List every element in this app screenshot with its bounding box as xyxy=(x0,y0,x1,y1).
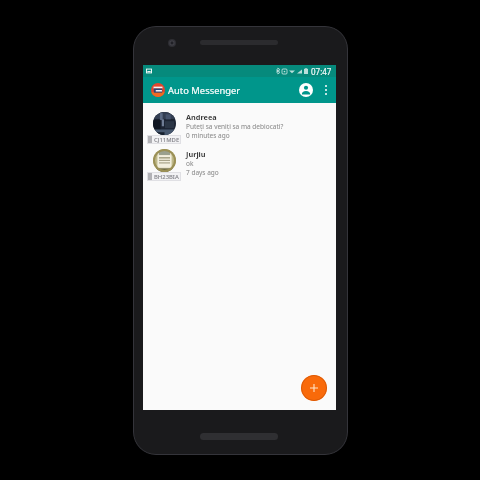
staticText: ok xyxy=(186,159,194,168)
staticText: 0 minutes ago xyxy=(186,131,230,140)
staticText: Puteți sa veniți sa ma debiocati? xyxy=(186,122,284,131)
button[interactable]: New message xyxy=(301,375,327,401)
staticText: 07:47 xyxy=(311,66,332,77)
staticText: Auto Messenger xyxy=(168,84,241,97)
button[interactable]: CJ11MDE xyxy=(143,111,336,145)
button[interactable]: BH23BIA xyxy=(143,148,336,182)
staticText: BH23BIA xyxy=(154,173,179,181)
staticText: Jurjiu xyxy=(186,149,206,159)
staticText: 7 days ago xyxy=(186,168,219,177)
staticText: CJ11MDE xyxy=(154,136,180,144)
button[interactable]: Account xyxy=(295,79,317,101)
button[interactable]: More options xyxy=(318,82,334,98)
staticText: Andreea xyxy=(186,112,217,122)
